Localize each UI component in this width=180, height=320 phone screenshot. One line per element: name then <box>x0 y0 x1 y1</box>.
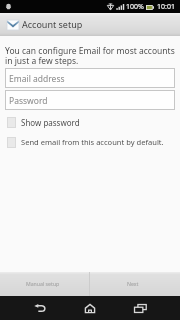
staticText: Send email from this account by default. <box>21 137 164 147</box>
staticText: Show password <box>21 117 80 128</box>
button[interactable]: Manual setup <box>0 272 89 296</box>
button[interactable]: Back <box>20 296 60 320</box>
staticText: Manual setup <box>26 280 60 287</box>
button[interactable]: Password <box>5 90 175 110</box>
button[interactable]: Recent apps <box>120 296 160 320</box>
button[interactable]: Send email from this account by default. <box>0 136 180 148</box>
button[interactable]: Show password <box>0 116 180 128</box>
staticText: in just a few steps. <box>5 55 79 67</box>
staticText: Account setup <box>22 18 83 30</box>
staticText: You can configure Email for most account… <box>5 45 175 57</box>
button[interactable]: Next <box>90 272 180 296</box>
staticText: Password <box>9 95 48 107</box>
staticText: 10:01 <box>157 2 175 12</box>
button[interactable]: Home <box>70 296 110 320</box>
staticText: 100% <box>126 2 144 12</box>
button[interactable]: Email address <box>5 68 175 88</box>
staticText: Next <box>127 280 139 287</box>
staticText: Email address <box>9 73 65 85</box>
